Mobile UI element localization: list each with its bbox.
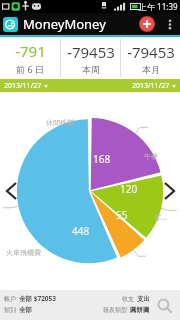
button[interactable]: 類別 bbox=[4, 306, 103, 314]
staticText: 本月 bbox=[142, 64, 160, 75]
button[interactable]: Add bbox=[137, 14, 157, 34]
staticText: 前 6 日 bbox=[16, 63, 44, 75]
staticText: 2013/11/27 bbox=[132, 81, 170, 91]
staticText: 火車飛機費 bbox=[6, 248, 41, 257]
button[interactable]: Next bbox=[160, 178, 178, 204]
staticText: 報表類型 bbox=[103, 306, 127, 314]
staticText: 圓餅圖 bbox=[130, 306, 150, 314]
button[interactable]: 報表類型 bbox=[103, 306, 150, 314]
staticText: 全部 bbox=[19, 306, 32, 314]
staticText: 收支 bbox=[122, 295, 134, 303]
staticText: 零... bbox=[154, 213, 167, 223]
button[interactable]: App icon bbox=[3, 17, 18, 32]
button[interactable]: More options bbox=[163, 13, 177, 35]
staticText: -79453 bbox=[127, 42, 175, 62]
staticText: 午餐 bbox=[144, 152, 158, 161]
staticText: 上午 11:39 bbox=[139, 1, 178, 12]
button[interactable]: -79453 bbox=[121, 37, 180, 79]
staticText: 本周 bbox=[82, 64, 100, 75]
staticText: -79453 bbox=[67, 42, 115, 62]
button[interactable]: Previous bbox=[2, 178, 20, 204]
staticText: 帳戶 bbox=[4, 295, 16, 303]
staticText: MoneyMoney bbox=[23, 15, 106, 33]
button[interactable]: 帳戶 bbox=[4, 294, 122, 303]
staticText: 120 bbox=[120, 182, 138, 196]
button[interactable]: 2013/11/27 bbox=[132, 81, 176, 91]
button[interactable]: Search bbox=[154, 295, 174, 315]
button[interactable]: -791 bbox=[0, 37, 60, 79]
button[interactable]: 2013/11/27 bbox=[4, 81, 48, 91]
staticText: -791 bbox=[15, 41, 46, 61]
staticText: 休閒娛樂 bbox=[46, 118, 74, 127]
button[interactable]: -79453 bbox=[61, 37, 120, 79]
staticText: 支出 bbox=[137, 295, 150, 303]
staticText: 55 bbox=[116, 208, 128, 222]
staticText: 168 bbox=[93, 152, 111, 166]
staticText: 類別 bbox=[4, 306, 16, 314]
staticText: 448 bbox=[72, 224, 90, 238]
staticText: 全部 $72053 bbox=[19, 294, 56, 303]
button[interactable]: 收支 bbox=[122, 295, 150, 303]
button[interactable]: Expense pie chart bbox=[0, 92, 180, 290]
staticText: 2013/11/27 bbox=[4, 81, 42, 91]
